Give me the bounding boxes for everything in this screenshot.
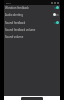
button[interactable]: Sound feedback volume	[4, 26, 60, 33]
button[interactable]: Sound feedback	[4, 19, 60, 26]
staticText: Sound feedback	[5, 21, 53, 25]
staticText: Vibration feedback	[5, 6, 53, 10]
button[interactable]: Toggle off	[53, 13, 59, 16]
button[interactable]: Toggle on	[53, 21, 59, 24]
button[interactable]: Sound volume	[4, 33, 60, 40]
button[interactable]: Audio alerting	[4, 11, 60, 18]
staticText: Sound volume	[5, 35, 59, 39]
button[interactable]: Toggle on	[53, 6, 59, 9]
staticText: Sound feedback volume	[5, 28, 59, 32]
staticText: Audio alerting	[5, 13, 53, 17]
staticText: 9:41	[6, 1, 11, 4]
button[interactable]: Vibration feedback	[4, 4, 60, 11]
